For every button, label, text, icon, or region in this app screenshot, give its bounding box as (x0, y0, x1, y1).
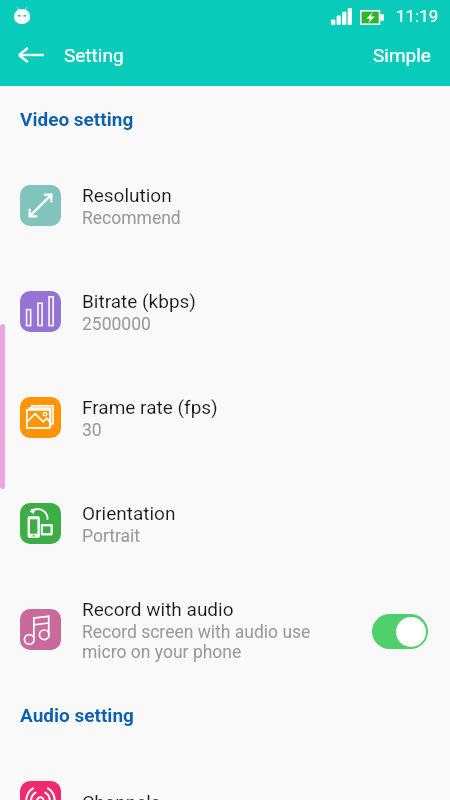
staticText: Recommend (82, 208, 181, 229)
button[interactable]: Simple (354, 34, 450, 76)
staticText: Frame rate (fps) (82, 396, 218, 418)
button[interactable]: Record with audio toggle (372, 614, 428, 649)
staticText: Bitrate (kbps) (82, 290, 196, 312)
staticText: 30 (82, 420, 102, 441)
staticText: Video setting (20, 108, 134, 130)
button[interactable]: Orientation (0, 470, 450, 576)
button[interactable]: Record with audio (0, 576, 450, 682)
staticText: 11:19 (396, 6, 439, 26)
button[interactable]: Bitrate (kbps) (0, 258, 450, 364)
staticText: Channels (82, 791, 161, 800)
staticText: 2500000 (82, 314, 151, 335)
button[interactable]: Channels (0, 748, 450, 800)
staticText: Resolution (82, 184, 172, 206)
button[interactable]: Frame rate (fps) (0, 364, 450, 470)
staticText: Setting (64, 44, 124, 66)
staticText: Portrait (82, 526, 141, 547)
button[interactable]: Back (9, 33, 53, 77)
button[interactable]: Resolution (0, 152, 450, 258)
staticText: Simple (373, 44, 431, 66)
staticText: Record screen with audio use micro on yo… (82, 622, 311, 662)
staticText: Orientation (82, 502, 176, 524)
staticText: Record with audio (82, 598, 234, 620)
staticText: Audio setting (20, 704, 134, 726)
